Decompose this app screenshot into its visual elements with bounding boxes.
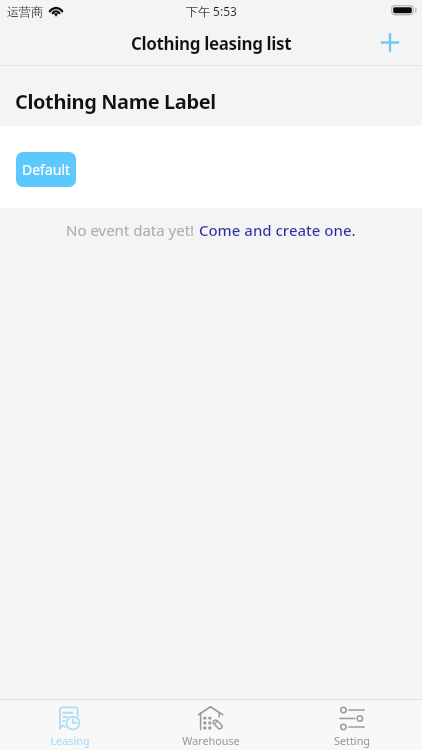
staticText: Clothing leasing list [131, 32, 292, 55]
button[interactable]: Warehouse [140, 700, 281, 750]
staticText: 运营商 [7, 4, 43, 19]
staticText: Clothing Name Label [15, 88, 216, 115]
button[interactable]: Add [376, 28, 404, 56]
staticText: Default [22, 160, 71, 179]
staticText: Warehouse [182, 733, 240, 748]
staticText: No event data yet! [66, 220, 195, 240]
staticText: Setting [334, 733, 370, 748]
button[interactable]: Default [16, 152, 76, 187]
button[interactable]: Setting [281, 700, 422, 750]
button[interactable]: Leasing [0, 700, 140, 750]
button[interactable]: Come and create one. [195, 220, 356, 240]
staticText: 下午 5:53 [186, 3, 237, 19]
staticText: Leasing [50, 733, 90, 748]
